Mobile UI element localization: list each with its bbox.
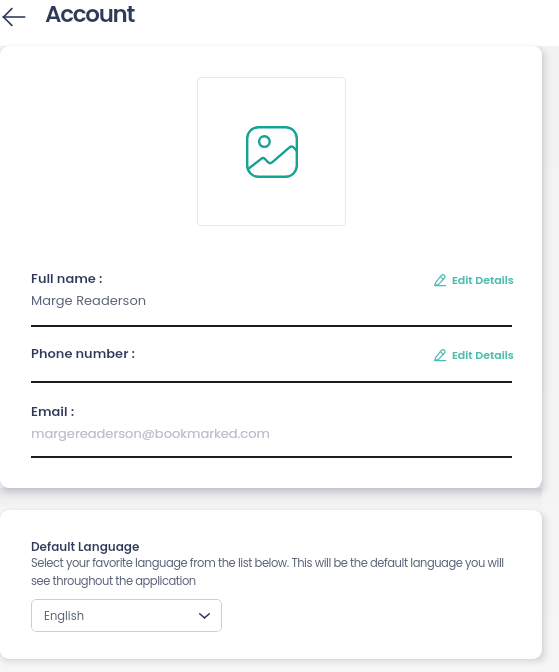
staticText: English <box>44 608 85 624</box>
staticText: Account <box>45 0 135 30</box>
staticText: Default Language <box>31 538 140 555</box>
staticText: Full name : <box>31 269 103 287</box>
button[interactable]: Edit Details <box>434 347 514 362</box>
button[interactable]: Profile photo <box>197 77 346 226</box>
staticText: Edit Details <box>452 272 514 287</box>
button[interactable]: Select language <box>31 599 222 632</box>
staticText: Marge Readerson <box>31 291 147 309</box>
staticText: Email : <box>31 402 75 420</box>
staticText: Edit Details <box>452 347 514 362</box>
staticText: margereaderson@bookmarked.com <box>31 424 270 442</box>
button[interactable]: Edit Details <box>434 272 514 287</box>
button[interactable]: Back <box>0 3 28 31</box>
staticText: Select your favorite language from the l… <box>31 555 515 589</box>
staticText: Phone number : <box>31 344 135 362</box>
